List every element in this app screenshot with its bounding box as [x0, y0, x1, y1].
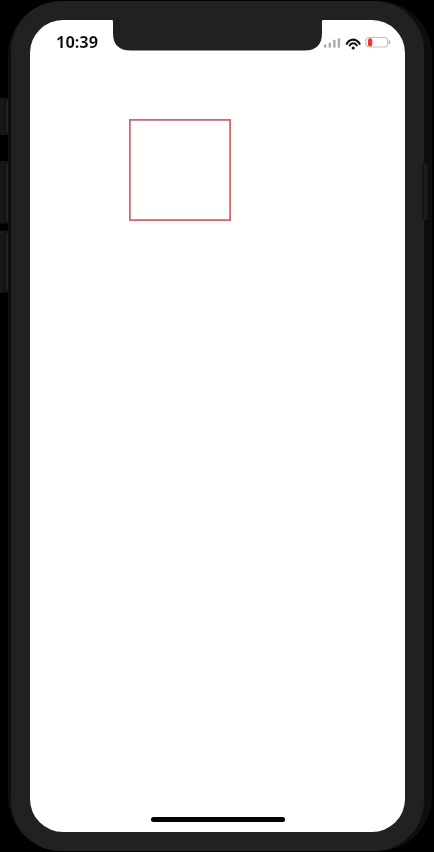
button[interactable]: Power [422, 163, 431, 221]
button[interactable]: 10:39 [48, 26, 104, 48]
button[interactable]: Volume down [4, 232, 13, 292]
button[interactable]: Image placeholder [129, 119, 231, 221]
button[interactable]: Silent switch [4, 99, 13, 134]
button[interactable]: Home [138, 809, 298, 829]
staticText: 10:39 [56, 30, 99, 52]
other: Cellular signal, Wi-Fi and battery statu… [30, 20, 405, 832]
button[interactable]: Volume up [4, 162, 13, 222]
